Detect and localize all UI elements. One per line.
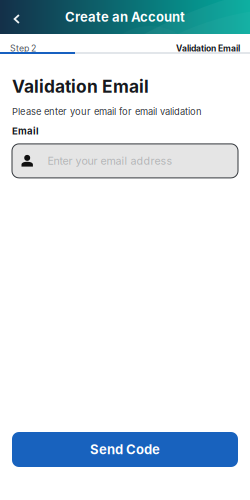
staticText: Email xyxy=(12,125,39,137)
staticText: Step 2 xyxy=(10,43,36,54)
staticText: Validation Email xyxy=(176,43,240,53)
button[interactable]: Back xyxy=(0,0,34,34)
staticText: Please enter your email for email valida… xyxy=(12,106,202,117)
staticText: Validation Email xyxy=(12,76,149,97)
staticText: Create an Account xyxy=(65,9,185,25)
staticText: Send Code xyxy=(90,442,160,457)
staticText: Enter your email address xyxy=(47,154,172,167)
button[interactable]: Send Code xyxy=(12,432,238,467)
